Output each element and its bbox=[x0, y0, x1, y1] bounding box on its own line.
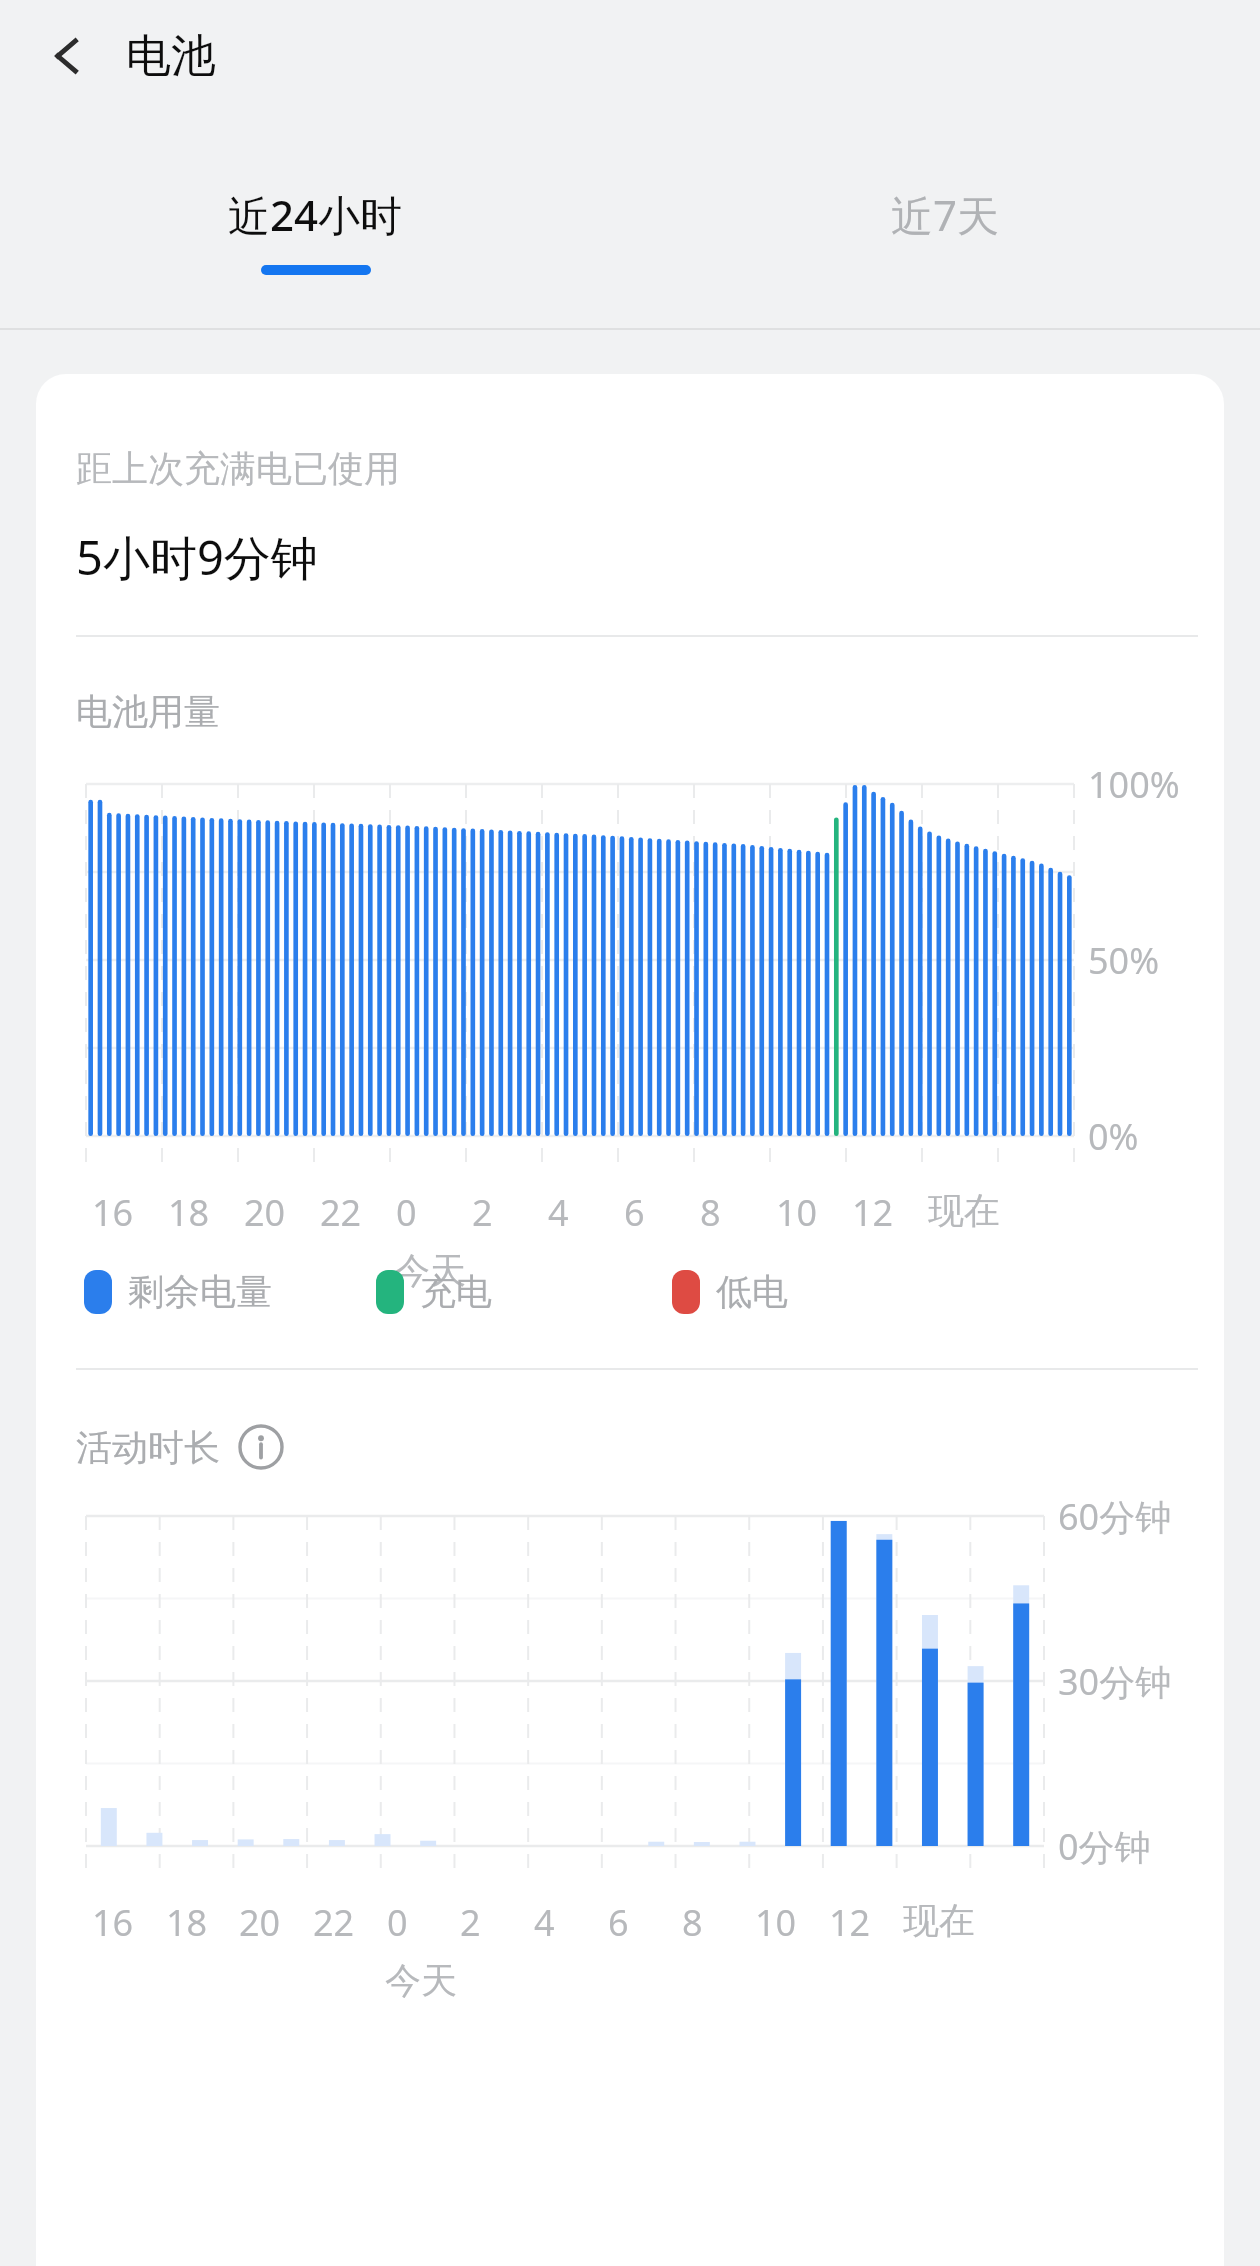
staticText: 2 bbox=[472, 1188, 493, 1237]
button[interactable]: 低电 bbox=[672, 1269, 788, 1314]
button[interactable]: 近7天 bbox=[630, 112, 1260, 330]
staticText: 电池用量 bbox=[76, 689, 220, 734]
staticText: 12 bbox=[829, 1898, 871, 1947]
staticText: 20 bbox=[244, 1188, 286, 1237]
staticText: 现在 bbox=[928, 1188, 1000, 1233]
staticText: 今天 bbox=[394, 1248, 466, 1293]
staticText: 18 bbox=[168, 1188, 210, 1237]
staticText: 电池 bbox=[126, 28, 216, 85]
staticText: 100% bbox=[1088, 760, 1180, 809]
staticText: 剩余电量 bbox=[128, 1269, 272, 1314]
staticText: 6 bbox=[608, 1898, 629, 1947]
staticText: 60分钟 bbox=[1058, 1492, 1172, 1541]
staticText: 0 bbox=[396, 1188, 417, 1237]
staticText: 今天 bbox=[385, 1958, 457, 2003]
staticText: 0 bbox=[387, 1898, 408, 1947]
staticText: 4 bbox=[548, 1188, 569, 1237]
staticText: 16 bbox=[92, 1898, 134, 1947]
staticText: 0分钟 bbox=[1058, 1822, 1151, 1871]
staticText: 充电 bbox=[420, 1269, 492, 1314]
staticText: 近24小时 bbox=[228, 186, 403, 243]
staticText: 16 bbox=[92, 1188, 134, 1237]
staticText: 现在 bbox=[903, 1898, 975, 1943]
staticText: 2 bbox=[460, 1898, 481, 1947]
staticText: 30分钟 bbox=[1058, 1657, 1172, 1706]
staticText: 近7天 bbox=[891, 186, 1000, 243]
staticText: 10 bbox=[776, 1188, 818, 1237]
button[interactable]: 活动时长说明 bbox=[236, 1422, 286, 1472]
staticText: 12 bbox=[852, 1188, 894, 1237]
staticText: 22 bbox=[320, 1188, 362, 1237]
staticText: 6 bbox=[624, 1188, 645, 1237]
staticText: 5小时9分钟 bbox=[76, 525, 318, 589]
staticText: 18 bbox=[166, 1898, 208, 1947]
staticText: 22 bbox=[313, 1898, 355, 1947]
staticText: 50% bbox=[1088, 936, 1160, 985]
button[interactable]: 充电 bbox=[376, 1269, 492, 1314]
button[interactable]: 剩余电量 bbox=[84, 1269, 272, 1314]
staticText: 低电 bbox=[716, 1269, 788, 1314]
staticText: 8 bbox=[700, 1188, 721, 1237]
staticText: 活动时长 bbox=[76, 1425, 220, 1470]
staticText: 距上次充满电已使用 bbox=[76, 446, 400, 491]
button[interactable]: Back bbox=[34, 23, 100, 89]
staticText: 8 bbox=[682, 1898, 703, 1947]
button[interactable]: 近24小时 bbox=[0, 112, 630, 330]
staticText: 20 bbox=[239, 1898, 281, 1947]
staticText: 0% bbox=[1088, 1112, 1139, 1161]
staticText: 4 bbox=[534, 1898, 555, 1947]
staticText: 10 bbox=[755, 1898, 797, 1947]
